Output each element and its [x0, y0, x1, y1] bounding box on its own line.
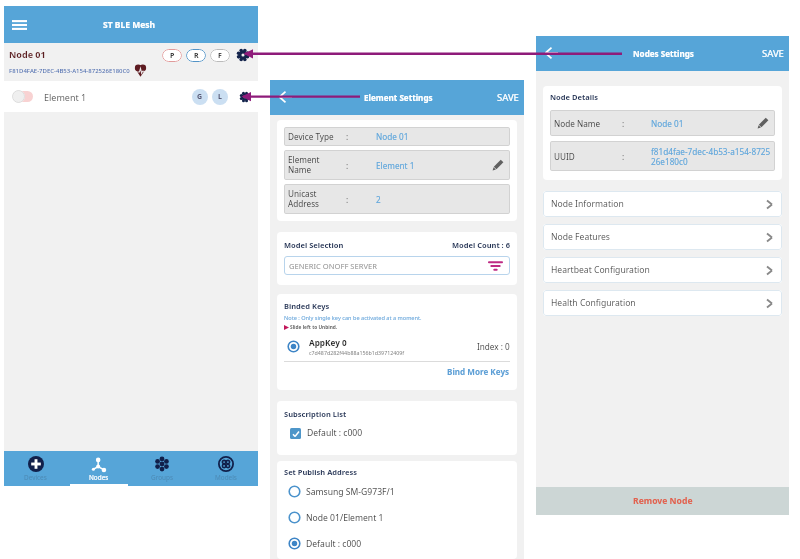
staticText: Subscription List — [284, 409, 347, 419]
button[interactable]: UUID — [550, 141, 775, 171]
staticText: Node 01 — [651, 118, 684, 129]
button[interactable]: GENERIC ONOFF SERVER — [284, 256, 510, 275]
staticText: Element 1 — [376, 160, 415, 171]
staticText: ST BLE Mesh — [103, 19, 156, 31]
button[interactable]: L — [212, 89, 228, 105]
staticText: Node Details — [550, 92, 598, 102]
button[interactable]: Menu — [4, 9, 35, 40]
button[interactable]: SAVE — [497, 91, 519, 104]
staticText: Nodes Settings — [633, 48, 694, 59]
staticText: : — [346, 131, 349, 142]
staticText: 2 — [376, 194, 381, 205]
button[interactable]: Health Configuration — [543, 290, 782, 316]
staticText: F — [218, 51, 222, 61]
staticText: c7d487d282f44b88a156b1d39712409f — [309, 349, 405, 356]
button[interactable]: Device Type — [284, 127, 510, 146]
button[interactable]: SAVE — [762, 47, 784, 60]
staticText: Nodes — [89, 473, 109, 482]
staticText: F81D4FAE-7DEC-4B53-A154-872526E180C0 — [9, 67, 130, 75]
button[interactable]: Edit — [491, 158, 505, 172]
staticText: Note : Only single key can be activated … — [284, 314, 422, 322]
staticText: : — [346, 160, 349, 171]
button[interactable]: Element Name — [284, 150, 510, 180]
staticText: Model Selection — [284, 240, 344, 250]
button[interactable]: Groups — [130, 451, 194, 486]
button[interactable]: Back — [270, 83, 300, 113]
staticText: Element Name — [288, 154, 320, 176]
staticText: Node 01/Element 1 — [306, 512, 384, 524]
button[interactable]: Node Name — [550, 110, 775, 136]
button[interactable]: Nodes — [67, 451, 130, 486]
button[interactable]: F — [210, 49, 230, 62]
button[interactable]: Default : c000 — [288, 537, 510, 550]
staticText: R — [194, 51, 199, 61]
button[interactable]: Node Features — [543, 224, 782, 250]
button[interactable]: Samsung SM-G973F/1 — [288, 485, 510, 498]
button[interactable]: Bind More Keys — [284, 366, 510, 377]
staticText: Heartbeat Configuration — [551, 264, 650, 276]
staticText: Index : 0 — [477, 341, 510, 352]
staticText: UUID — [554, 151, 575, 162]
staticText: Node Name — [554, 118, 601, 129]
button[interactable]: Element settings — [238, 90, 252, 104]
staticText: Node Features — [551, 231, 610, 243]
staticText: Device Type — [288, 131, 334, 142]
staticText: Node Information — [551, 198, 624, 210]
button[interactable]: Node 01/Element 1 — [288, 511, 510, 524]
staticText: Remove Node — [633, 495, 693, 507]
button[interactable]: G — [192, 89, 208, 105]
button[interactable]: Node settings — [236, 48, 250, 62]
staticText: AppKey 0 — [309, 337, 347, 348]
button[interactable]: Models — [194, 451, 258, 486]
staticText: : — [622, 118, 625, 129]
staticText: Binded Keys — [284, 301, 330, 311]
staticText: L — [218, 92, 222, 102]
staticText: : — [622, 151, 625, 162]
button[interactable]: Node Information — [543, 191, 782, 217]
staticText: f81d4fae-7dec-4b53-a154-8725 26e180c0 — [651, 146, 771, 167]
button[interactable]: Node 01 — [4, 43, 258, 81]
staticText: Node 01 — [376, 131, 409, 142]
button[interactable]: P — [162, 49, 182, 62]
staticText: SAVE — [497, 91, 519, 104]
button[interactable]: Edit — [756, 116, 770, 130]
button[interactable]: Default : c000 — [290, 427, 363, 439]
staticText: Default : c000 — [306, 538, 362, 550]
staticText: Health Configuration — [551, 297, 636, 309]
staticText: SAVE — [762, 47, 784, 60]
button[interactable]: R — [186, 49, 206, 62]
staticText: Models — [215, 473, 237, 482]
button[interactable]: Remove Node — [536, 487, 789, 515]
staticText: Groups — [151, 473, 173, 482]
staticText: G — [197, 92, 203, 102]
staticText: Node 01 — [9, 48, 46, 60]
staticText: Element Settings — [364, 92, 433, 103]
staticText: Default : c000 — [307, 427, 363, 439]
staticText: Element 1 — [44, 91, 87, 103]
button[interactable]: Unicast Address — [284, 184, 510, 214]
staticText: Unicast Address — [288, 188, 319, 210]
staticText: : — [346, 194, 349, 205]
staticText: Bind More Keys — [447, 366, 510, 377]
staticText: Slide left to Unbind. — [290, 324, 338, 331]
staticText: Samsung SM-G973F/1 — [306, 486, 395, 498]
button[interactable]: Back — [536, 39, 566, 69]
staticText: Model Count : 6 — [452, 240, 510, 250]
button[interactable]: Devices — [4, 451, 67, 486]
staticText: Devices — [24, 473, 47, 482]
button[interactable]: Element 1 — [4, 81, 258, 112]
button[interactable]: Heartbeat Configuration — [543, 257, 782, 283]
staticText: P — [170, 51, 175, 61]
staticText: GENERIC ONOFF SERVER — [289, 261, 377, 271]
staticText: Set Publish Address — [284, 467, 358, 477]
